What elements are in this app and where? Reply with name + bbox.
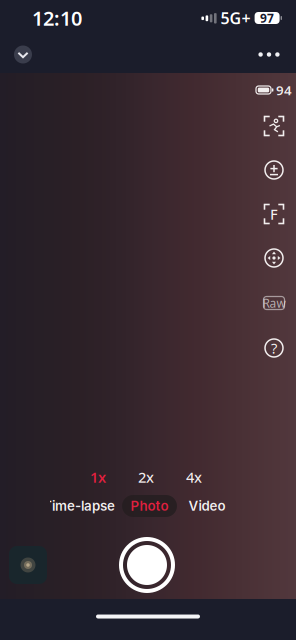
button[interactable]: Exposure: [256, 148, 292, 192]
staticText: 4x: [186, 467, 202, 487]
button[interactable]: Help: [256, 326, 292, 370]
staticText: 97: [260, 10, 274, 26]
staticText: 1x: [90, 467, 106, 487]
staticText: F: [270, 204, 278, 224]
button[interactable]: Stabilization: [256, 236, 292, 280]
button[interactable]: 1x: [81, 467, 115, 487]
staticText: 5G+: [221, 7, 251, 29]
button[interactable]: Photo: [122, 495, 177, 517]
button[interactable]: Collapse camera controls: [14, 45, 32, 63]
staticText: Photo: [130, 498, 168, 514]
button[interactable]: Flash: [256, 192, 292, 236]
staticText: 2x: [138, 467, 154, 487]
staticText: 94: [276, 81, 292, 99]
staticText: Time-lapse: [43, 498, 115, 514]
button[interactable]: Take photo: [119, 537, 175, 593]
staticText: ?: [271, 338, 277, 358]
button[interactable]: Time-lapse: [42, 495, 116, 517]
button[interactable]: Video: [188, 495, 226, 517]
staticText: Raw: [262, 295, 285, 311]
button[interactable]: More camera options: [252, 43, 286, 65]
button[interactable]: Photo library: [9, 546, 47, 584]
button[interactable]: Action mode: [256, 104, 292, 148]
button[interactable]: 4x: [177, 467, 211, 487]
button[interactable]: Raw capture: [256, 280, 292, 326]
staticText: Video: [188, 498, 225, 514]
staticText: 12:10: [32, 5, 82, 31]
button[interactable]: 2x: [129, 467, 163, 487]
